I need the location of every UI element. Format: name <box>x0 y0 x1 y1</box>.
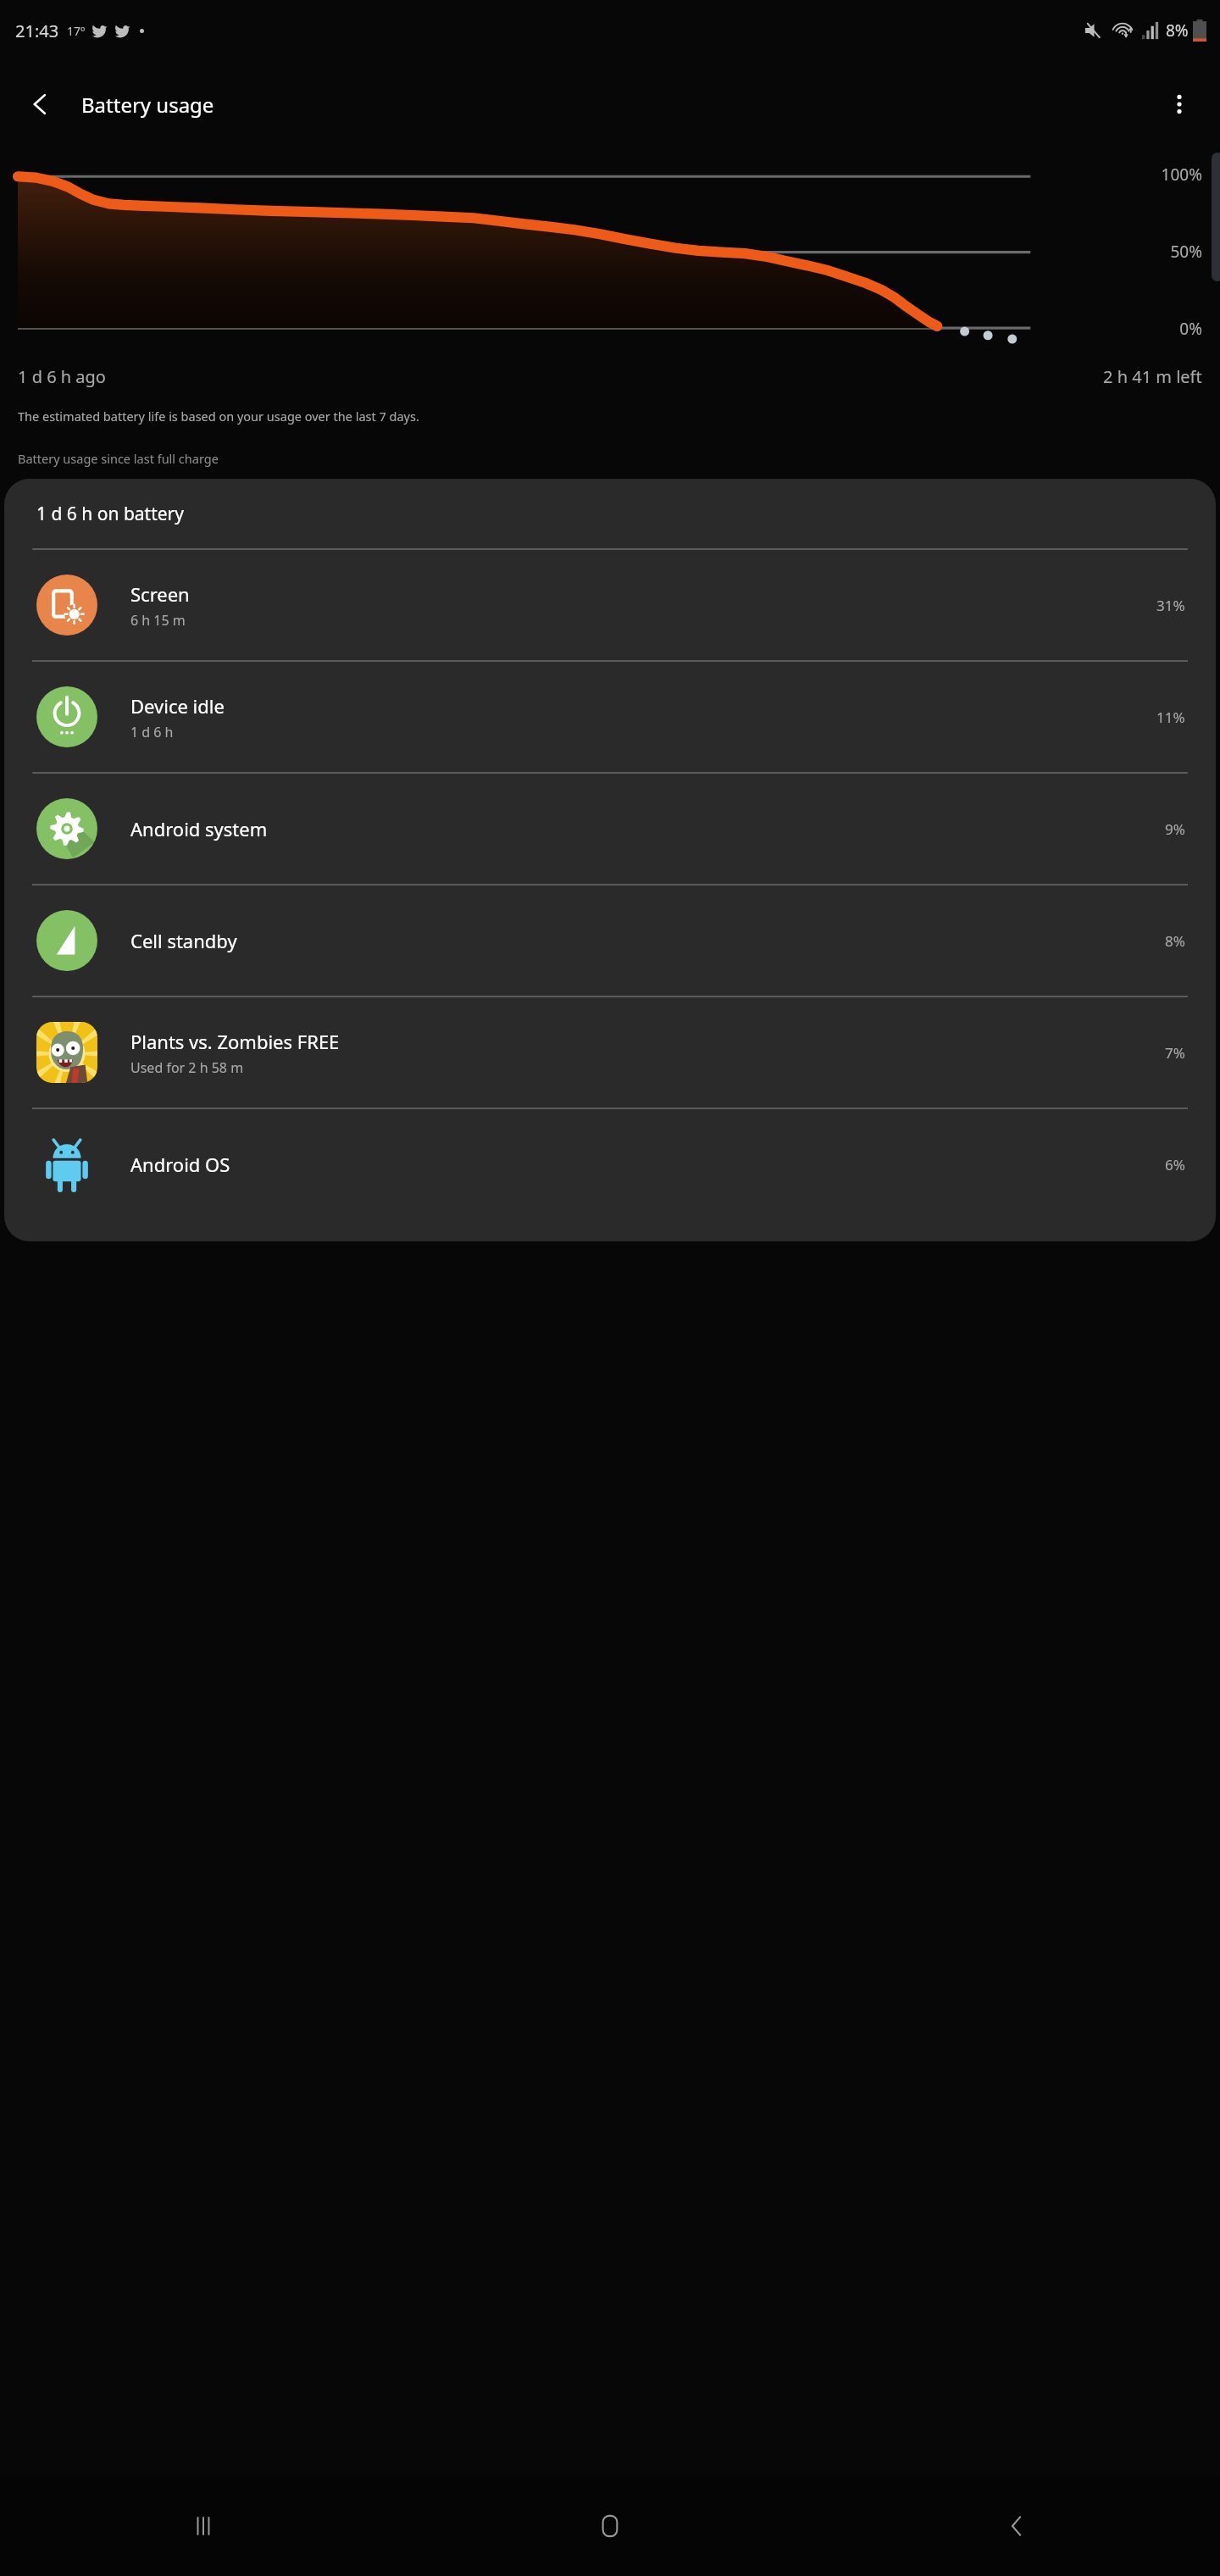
staticText: 31% <box>1156 596 1185 615</box>
button[interactable]: Back <box>813 2476 1220 2576</box>
button[interactable]: Home <box>407 2476 813 2576</box>
staticText: 11% <box>1156 708 1185 727</box>
staticText: 1 d 6 h on battery <box>36 502 184 526</box>
staticText: Battery usage since last full charge <box>18 450 219 467</box>
button[interactable]: Device idle <box>4 662 1216 772</box>
button[interactable]: Recents <box>0 2476 407 2576</box>
staticText: Android OS <box>130 1152 230 1177</box>
staticText: 21:43 <box>15 19 59 42</box>
staticText: Android system <box>130 816 268 841</box>
button[interactable]: Plants vs. Zombies FREE <box>4 997 1216 1108</box>
staticText: 1 d 6 h <box>130 723 174 741</box>
staticText: 17º <box>67 23 86 39</box>
staticText: 6 h 15 m <box>130 611 186 630</box>
staticText: The estimated battery life is based on y… <box>18 408 419 425</box>
staticText: 8% <box>1166 19 1189 42</box>
staticText: 0% <box>1028 318 1202 340</box>
button[interactable]: More options <box>1157 82 1201 126</box>
staticText: Used for 2 h 58 m <box>130 1058 244 1077</box>
staticText: 9% <box>1165 819 1185 839</box>
staticText: Plants vs. Zombies FREE <box>130 1029 340 1054</box>
staticText: Device idle <box>130 693 225 719</box>
staticText: 100% <box>1028 164 1202 186</box>
staticText: 1 d 6 h ago <box>18 365 106 388</box>
staticText: Battery usage <box>81 91 214 119</box>
staticText: 50% <box>1028 241 1202 263</box>
button[interactable]: Android system <box>4 774 1216 884</box>
staticText: Cell standby <box>130 928 237 953</box>
button[interactable]: Back <box>19 82 63 126</box>
staticText: Screen <box>130 581 190 607</box>
staticText: 2 h 41 m left <box>1103 365 1202 388</box>
button[interactable]: Screen <box>4 550 1216 660</box>
staticText: 6% <box>1165 1155 1185 1174</box>
staticText: 7% <box>1165 1043 1185 1063</box>
button[interactable]: Cell standby <box>4 885 1216 996</box>
button[interactable]: Android OS <box>4 1109 1216 1219</box>
staticText: 8% <box>1165 931 1185 951</box>
